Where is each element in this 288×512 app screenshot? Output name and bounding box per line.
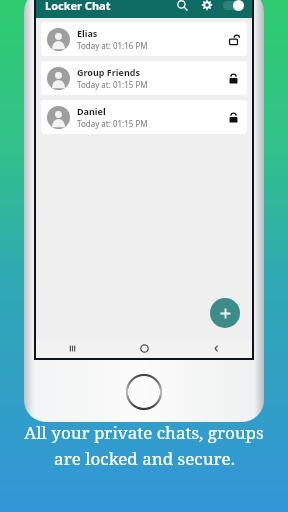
staticText: are locked and secure. [54,447,235,470]
button[interactable]: Toggle lock [223,0,245,14]
staticText: Group Friends [77,66,140,78]
staticText: Today at: 01:16 PM [77,40,148,51]
staticText: Elias [77,27,98,39]
button[interactable]: Elias [41,22,247,56]
button[interactable]: Home [108,338,180,358]
button[interactable]: Recents [36,338,108,358]
staticText: Daniel [77,105,106,117]
button[interactable]: Daniel [41,100,247,134]
button[interactable]: Back [180,338,252,358]
button[interactable]: Group Friends [41,61,247,95]
button[interactable]: New chat [210,298,240,328]
staticText: Today at: 01:15 PM [77,118,148,129]
staticText: All your private chats, groups [24,421,264,444]
button[interactable]: Search [173,0,191,14]
button[interactable]: Settings [198,0,216,14]
staticText: Locker Chat [45,0,111,13]
staticText: Today at: 01:15 PM [77,79,148,90]
